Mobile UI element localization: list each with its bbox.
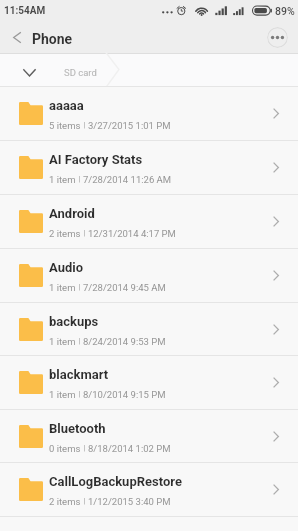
staticText: 8/10/2014 9:15 PM xyxy=(83,389,166,400)
staticText: 1 item xyxy=(49,282,76,293)
staticText: 5 items xyxy=(49,120,81,131)
staticText: 11:54AM xyxy=(4,5,46,17)
staticText: 8/18/2014 1:02 PM xyxy=(88,443,171,454)
staticText: Bluetooth xyxy=(49,421,106,436)
button[interactable]: More options xyxy=(267,27,288,48)
staticText: AI Factory Stats xyxy=(49,152,143,167)
button[interactable]: aaaaa xyxy=(0,87,298,140)
staticText: backups xyxy=(49,314,99,329)
staticText: 7/28/2014 11:26 AM xyxy=(83,174,172,185)
button[interactable]: backups xyxy=(0,303,298,355)
staticText: Phone xyxy=(32,31,73,47)
button[interactable]: Bluetooth xyxy=(0,410,298,462)
staticText: CallLogBackupRestore xyxy=(49,474,182,489)
staticText: 1/12/2015 3:40 PM xyxy=(88,496,171,507)
staticText: 1 item xyxy=(49,389,76,400)
staticText: 8/24/2014 9:53 PM xyxy=(83,336,166,347)
button[interactable]: Choose storage xyxy=(17,56,42,89)
staticText: 89% xyxy=(275,5,295,17)
staticText: 1 item xyxy=(49,336,76,347)
staticText: blackmart xyxy=(49,367,109,382)
staticText: Android xyxy=(49,206,95,221)
button[interactable]: Audio xyxy=(0,249,298,302)
staticText: 0 items xyxy=(49,443,81,454)
staticText: 7/28/2014 9:45 AM xyxy=(83,282,166,293)
staticText: 2 items xyxy=(49,496,81,507)
staticText: 2 items xyxy=(49,228,81,239)
button[interactable]: AI Factory Stats xyxy=(0,141,298,194)
staticText: SD card xyxy=(64,67,97,78)
staticText: 12/31/2014 4:17 PM xyxy=(88,228,176,239)
button[interactable]: CallLogBackupRestore xyxy=(0,463,298,516)
button[interactable]: blackmart xyxy=(0,356,298,409)
button[interactable]: Android xyxy=(0,195,298,248)
button[interactable]: SD card xyxy=(57,56,103,89)
staticText: Audio xyxy=(49,260,84,275)
staticText: aaaaa xyxy=(49,98,84,113)
button[interactable]: Phone xyxy=(0,21,298,54)
staticText: 1 item xyxy=(49,174,76,185)
staticText: 3/27/2015 1:01 PM xyxy=(88,120,171,131)
